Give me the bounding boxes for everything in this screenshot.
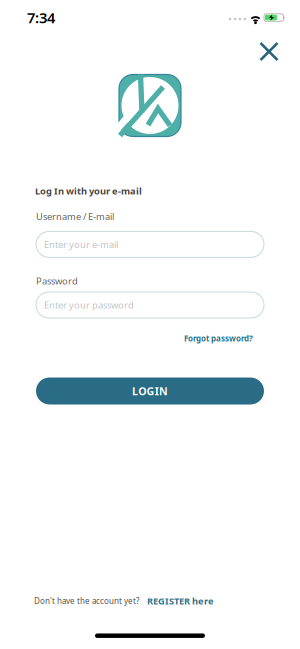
staticText: Enter your password (44, 299, 134, 311)
staticText: Log In with your e-mail (35, 185, 142, 197)
button[interactable]: REGISTER here (147, 595, 214, 607)
staticText: LOGIN (132, 384, 168, 398)
button[interactable]: Close (254, 36, 284, 66)
staticText: Don't have the account yet? (34, 596, 139, 606)
button[interactable]: Username / E-mail (36, 231, 264, 257)
button[interactable]: LOGIN (36, 377, 264, 404)
staticText: Password (36, 275, 78, 287)
staticText: 7:34 (27, 8, 55, 27)
staticText: Forgot password? (184, 333, 253, 344)
button[interactable]: Password (36, 292, 264, 318)
staticText: REGISTER here (147, 595, 214, 607)
staticText: Enter your e-mail (44, 238, 118, 251)
staticText: Username / E-mail (36, 210, 114, 223)
button[interactable]: Forgot password? (184, 333, 253, 344)
